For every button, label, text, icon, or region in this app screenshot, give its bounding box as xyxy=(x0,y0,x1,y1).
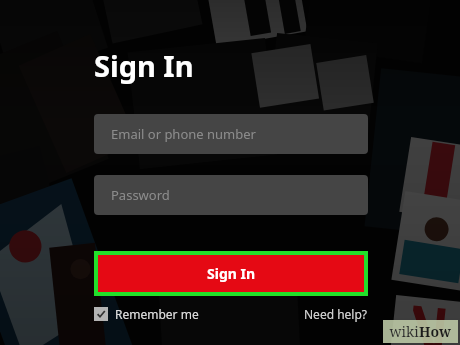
staticText: Remember me xyxy=(115,306,199,322)
button[interactable]: Password xyxy=(94,175,368,215)
button[interactable]: Email or phone number xyxy=(94,114,368,154)
staticText: Sign In xyxy=(207,264,256,283)
staticText: Need help? xyxy=(304,306,368,322)
button[interactable]: Need help? xyxy=(304,306,368,322)
staticText: How xyxy=(419,322,452,341)
staticText: Sign In xyxy=(94,46,194,85)
staticText: Email or phone number xyxy=(111,125,256,143)
button[interactable]: Remember me xyxy=(94,306,199,322)
button[interactable]: Sign In xyxy=(98,255,364,292)
staticText: wiki xyxy=(389,322,419,341)
staticText: Password xyxy=(111,186,170,204)
